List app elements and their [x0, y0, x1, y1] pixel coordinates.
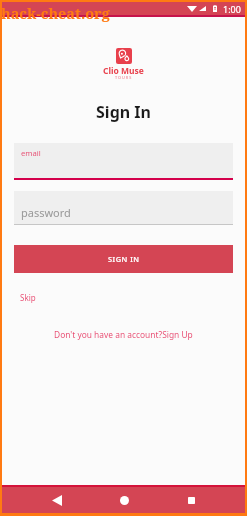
button[interactable]: SIGN IN — [14, 245, 233, 273]
button[interactable]: Skip — [20, 290, 36, 305]
staticText: SIGN IN — [108, 254, 140, 264]
staticText: hack-cheat.org — [1, 3, 110, 23]
staticText: TOURS — [115, 75, 133, 80]
button[interactable]: Don't you have an account?Sign Up — [54, 328, 193, 341]
button[interactable]: Home — [104, 487, 144, 513]
staticText: email — [21, 148, 41, 158]
staticText: Clio Muse — [103, 65, 144, 77]
staticText: Sign In — [96, 101, 151, 123]
staticText: 1:00 — [223, 3, 241, 15]
staticText: password — [21, 205, 71, 220]
button[interactable]: Recent apps — [171, 487, 211, 513]
button[interactable]: Back — [37, 487, 77, 513]
button[interactable]: password — [14, 191, 233, 225]
button[interactable]: email — [14, 143, 233, 180]
staticText: Skip — [20, 292, 36, 303]
staticText: Don't you have an account?Sign Up — [54, 329, 193, 340]
